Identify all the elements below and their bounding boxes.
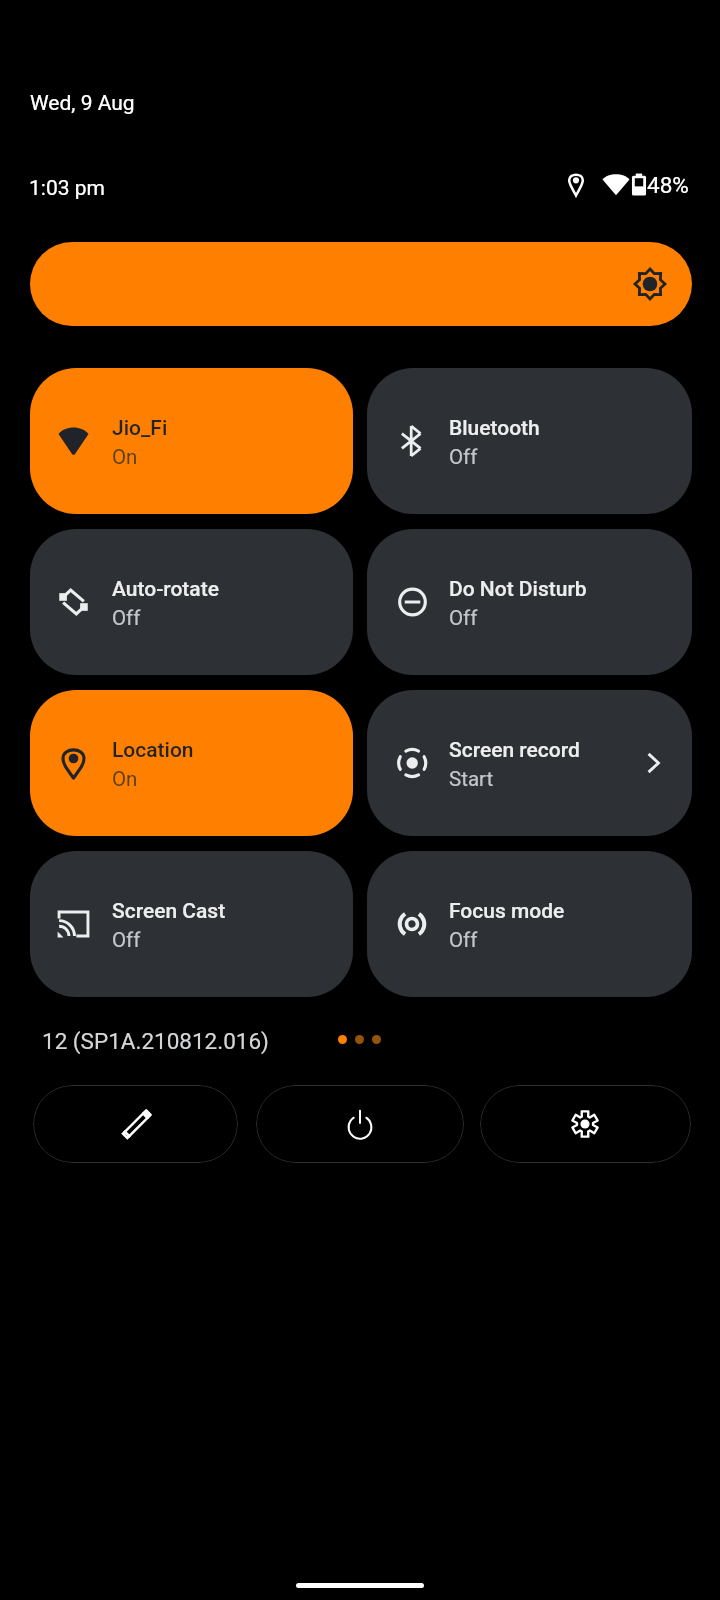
button[interactable]: Edit (33, 1085, 238, 1163)
staticText: Auto-rotate (112, 577, 219, 602)
staticText: Wed, 9 Aug (30, 91, 135, 116)
staticText: Bluetooth (449, 416, 540, 441)
staticText: Screen record (449, 738, 580, 763)
button[interactable]: Jio_Fi (30, 368, 353, 514)
staticText: Jio_Fi (112, 416, 168, 441)
staticText: Off (112, 928, 141, 952)
button[interactable]: Settings (480, 1085, 691, 1163)
staticText: On (112, 445, 138, 469)
button[interactable]: Do Not Disturb (367, 529, 692, 675)
button[interactable]: Location (30, 690, 353, 836)
staticText: Start (449, 767, 494, 791)
staticText: Location (112, 738, 194, 763)
button[interactable]: Screen Cast (30, 851, 353, 997)
staticText: 1:03 pm (29, 176, 105, 201)
staticText: Focus mode (449, 899, 565, 924)
staticText: 48% (647, 172, 689, 198)
staticText: On (112, 767, 138, 791)
button[interactable]: Brightness (30, 242, 692, 326)
button[interactable]: Focus mode (367, 851, 692, 997)
staticText: Do Not Disturb (449, 577, 587, 602)
button[interactable]: Power (256, 1085, 464, 1163)
staticText: Off (112, 606, 141, 630)
staticText: Off (449, 928, 478, 952)
button[interactable]: Bluetooth (367, 368, 692, 514)
staticText: Screen Cast (112, 899, 226, 924)
staticText: Off (449, 445, 478, 469)
staticText: 12 (SP1A.210812.016) (42, 1028, 269, 1054)
staticText: Off (449, 606, 478, 630)
button[interactable]: Screen record (367, 690, 692, 836)
button[interactable]: Auto-rotate (30, 529, 353, 675)
